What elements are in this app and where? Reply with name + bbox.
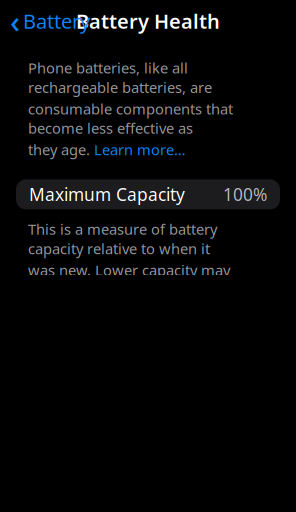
staticText: Maximum Capacity bbox=[29, 183, 185, 206]
button[interactable]: Maximum Capacity bbox=[16, 179, 280, 209]
staticText: ‹ bbox=[10, 1, 20, 41]
staticText: Phone batteries, like all rechargeable b… bbox=[28, 58, 212, 97]
staticText: This is a measure of battery capacity re… bbox=[28, 219, 217, 258]
staticText: Battery bbox=[23, 8, 90, 34]
button[interactable]: ‹ bbox=[0, 0, 100, 47]
button[interactable]: Learn more… bbox=[94, 140, 186, 159]
staticText: was new. Lower capacity may result in fe… bbox=[28, 260, 230, 299]
staticText: Battery Health bbox=[76, 8, 220, 34]
staticText: Learn more… bbox=[94, 140, 186, 159]
staticText: they age. bbox=[28, 140, 94, 159]
staticText: consumable components that become less e… bbox=[28, 99, 233, 138]
staticText: 100% bbox=[223, 183, 267, 206]
